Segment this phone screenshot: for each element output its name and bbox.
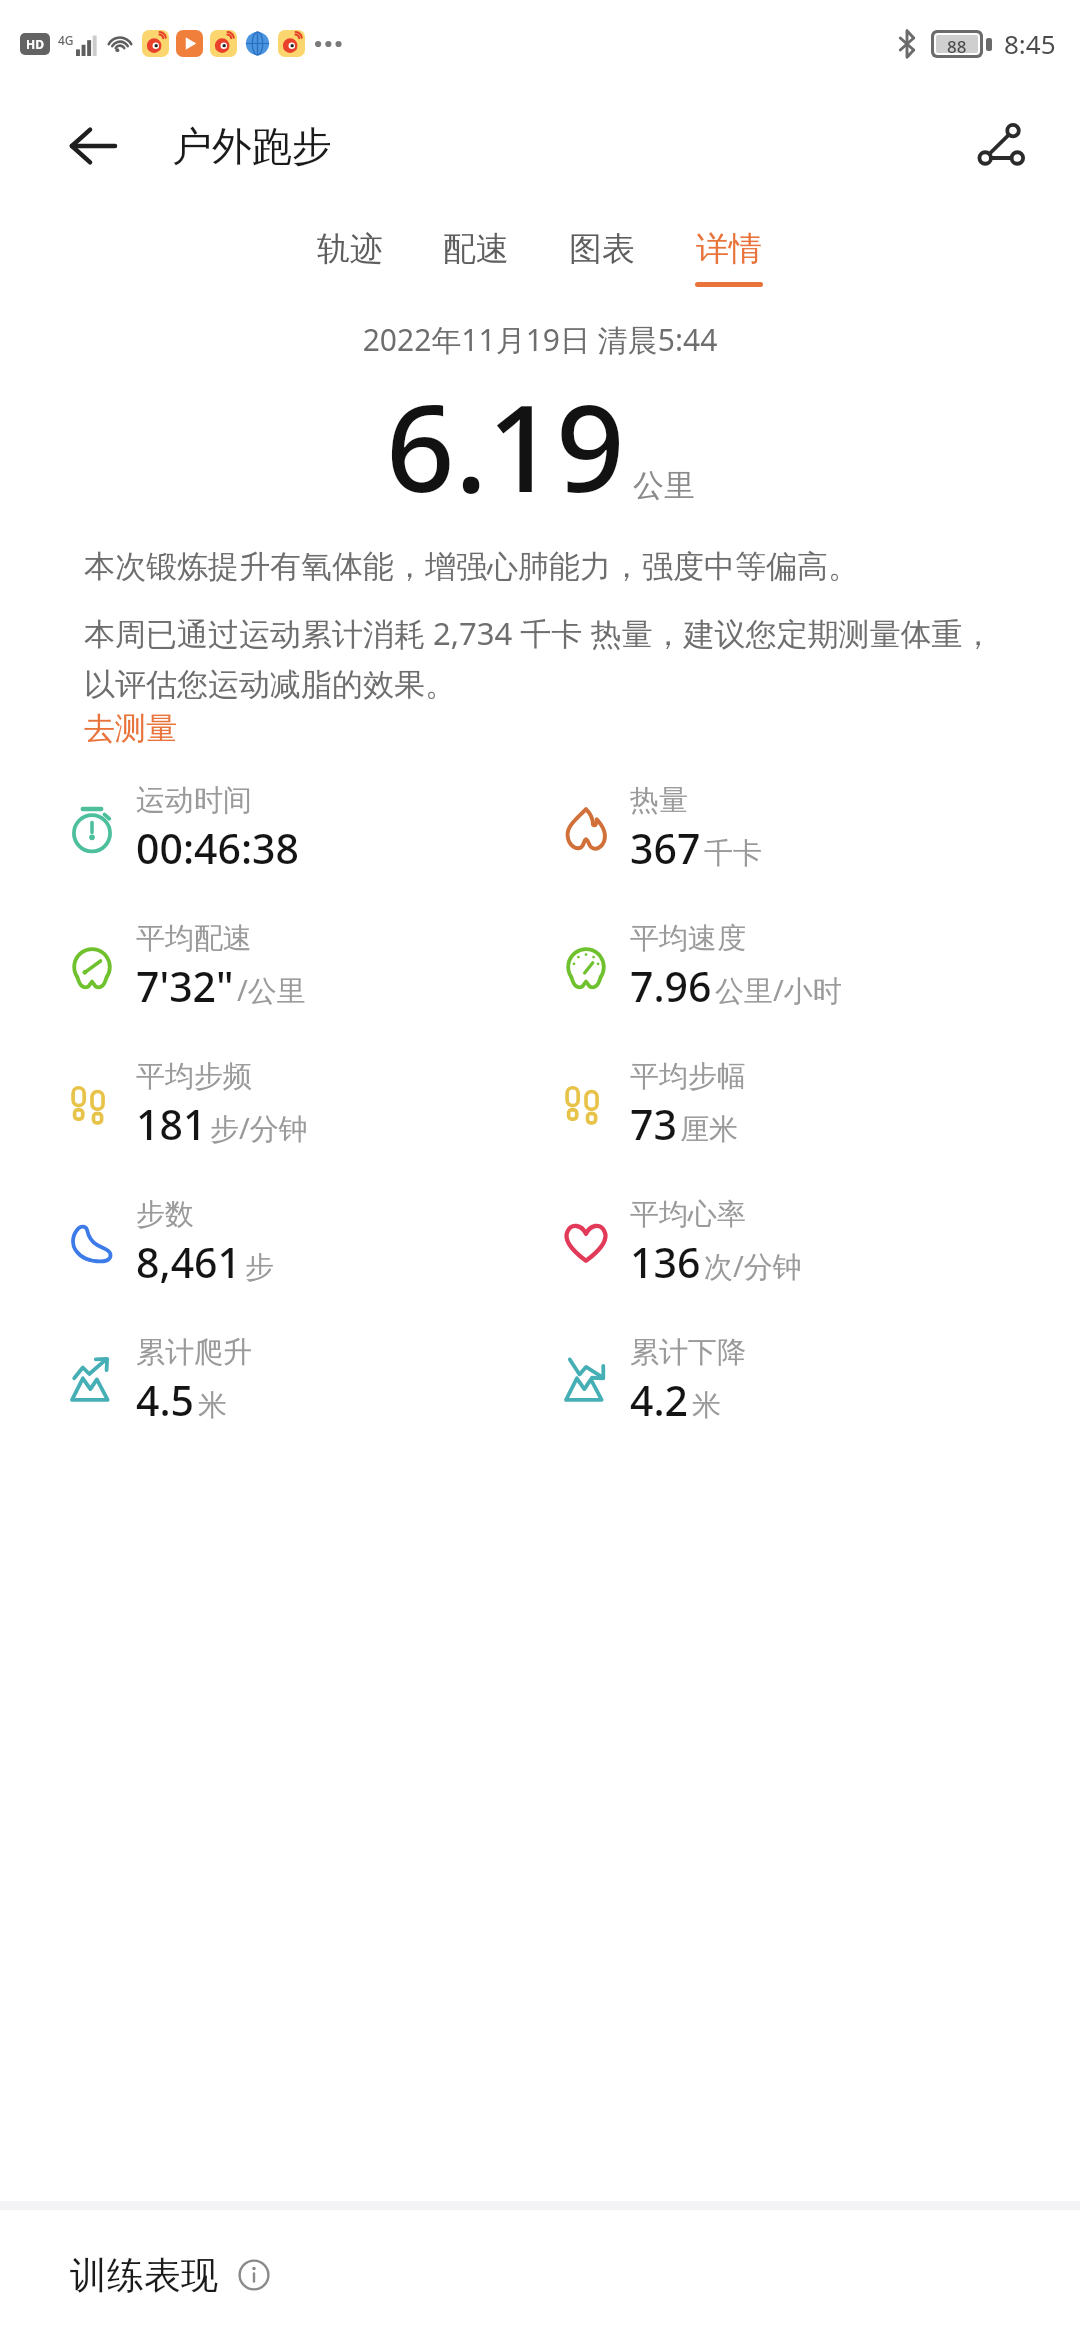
staticText: 累计爬升	[136, 1334, 252, 1371]
staticText: 平均心率	[630, 1196, 746, 1233]
staticText: 本周已通过运动累计消耗 2,734 千卡 热量，建议您定期测量体重，以评估您运动…	[84, 612, 996, 705]
staticText: 88	[947, 35, 967, 53]
staticText: 7.96	[630, 958, 712, 1014]
staticText: 图表	[569, 228, 635, 270]
staticText: 181	[136, 1096, 207, 1152]
button[interactable]: 平均配速	[62, 920, 310, 1014]
button[interactable]: 平均速度	[556, 920, 846, 1014]
staticText: 训练表现	[70, 2252, 218, 2299]
button[interactable]: 运动时间	[62, 782, 304, 876]
staticText: 平均步频	[136, 1058, 252, 1095]
staticText: 平均配速	[136, 920, 252, 957]
button[interactable]: 去测量	[84, 709, 177, 748]
button[interactable]: 平均心率	[556, 1196, 806, 1290]
staticText: 米	[692, 1387, 721, 1424]
staticText: 轨迹	[317, 228, 383, 270]
staticText: 4.2	[630, 1372, 689, 1428]
button[interactable]: 配速	[437, 222, 515, 293]
staticText: 户外跑步	[172, 121, 332, 171]
staticText: 7'32"	[136, 958, 234, 1014]
staticText: 公里/小时	[715, 970, 842, 1010]
button[interactable]: 累计下降	[556, 1334, 750, 1428]
staticText: 厘米	[680, 1111, 738, 1148]
button[interactable]: 轨迹	[311, 222, 389, 293]
staticText: 本次锻炼提升有氧体能，增强心肺能力，强度中等偏高。	[84, 547, 859, 586]
staticText: 平均步幅	[630, 1058, 746, 1095]
staticText: 累计下降	[630, 1334, 746, 1371]
staticText: 4.5	[136, 1372, 195, 1428]
staticText: 配速	[443, 228, 509, 270]
staticText: 运动时间	[136, 782, 252, 819]
staticText: 00:46:38	[136, 820, 300, 876]
staticText: 步	[245, 1249, 274, 1286]
staticText: 步数	[136, 1196, 194, 1233]
staticText: 米	[198, 1387, 227, 1424]
staticText: 公里	[633, 466, 695, 505]
staticText: 热量	[630, 782, 688, 819]
button[interactable]: 热量	[556, 782, 766, 876]
staticText: HD	[26, 36, 44, 52]
button[interactable]: 图表	[563, 222, 641, 293]
staticText: 2022年11月19日 清晨5:44	[0, 319, 1080, 360]
staticText: 8,461	[136, 1234, 242, 1290]
button[interactable]: Back	[52, 105, 134, 187]
staticText: 详情	[696, 228, 762, 270]
staticText: 去测量	[84, 709, 177, 748]
staticText: 次/分钟	[704, 1246, 802, 1286]
staticText: 73	[630, 1096, 677, 1152]
staticText: 8:45	[1004, 26, 1056, 61]
button[interactable]: 详情	[689, 222, 769, 293]
staticText: 136	[630, 1234, 701, 1290]
button[interactable]: 平均步幅	[556, 1058, 750, 1152]
button[interactable]: 步数	[62, 1196, 278, 1290]
staticText: 千卡	[704, 835, 762, 872]
button[interactable]: Share	[960, 104, 1044, 188]
button[interactable]: 平均步频	[62, 1058, 312, 1152]
staticText: /公里	[237, 970, 306, 1010]
staticText: 平均速度	[630, 920, 746, 957]
staticText: 4G	[58, 32, 74, 48]
staticText: 367	[630, 820, 701, 876]
staticText: 6.19	[386, 364, 625, 527]
button[interactable]: Info	[232, 2253, 276, 2297]
button[interactable]: 累计爬升	[62, 1334, 256, 1428]
staticText: 步/分钟	[210, 1108, 308, 1148]
